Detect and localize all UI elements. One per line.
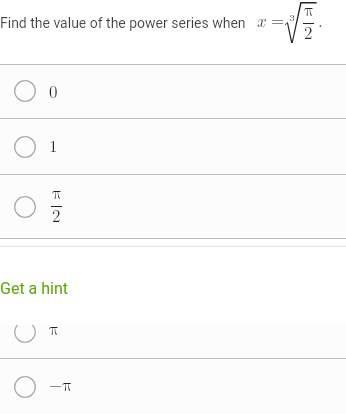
staticText: π [49,325,59,338]
staticText: π [52,185,62,202]
staticText: Find the value of the power series when [0,15,246,31]
staticText: . [318,13,323,30]
staticText: −π [49,377,73,394]
staticText: 0 [49,84,58,101]
staticText: 1 [49,138,58,155]
staticText: = [271,12,285,29]
button[interactable]: Choice minus pi [0,359,346,414]
button[interactable]: Get a hint [0,279,69,298]
staticText: 2 [52,208,61,225]
button[interactable]: Choice pi over 2 [0,175,346,238]
staticText: π [304,2,314,19]
button[interactable]: Choice 0 [0,65,346,118]
staticText: 2 [304,25,313,42]
staticText: Get a hint [0,279,69,298]
button[interactable]: Choice pi [0,325,346,358]
staticText: 𝑥 [257,13,267,30]
button[interactable]: Choice 1 [0,119,346,174]
staticText: 3 [289,11,296,24]
